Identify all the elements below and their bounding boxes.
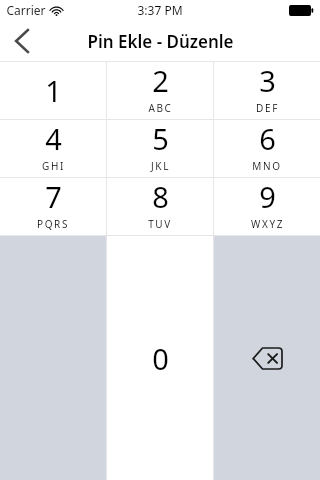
staticText: 8 (152, 177, 169, 216)
staticText: PQRS (37, 217, 69, 231)
button[interactable]: Backspace (214, 236, 320, 480)
staticText: 5 (152, 119, 169, 158)
staticText: 7 (45, 177, 62, 216)
staticText: 0 (152, 339, 169, 378)
button[interactable]: 3 (214, 62, 320, 119)
staticText: 1 (45, 71, 62, 110)
button[interactable]: 9 (214, 178, 320, 235)
button[interactable]: 2 (107, 62, 213, 119)
button[interactable]: 1 (0, 62, 106, 119)
staticText: JKL (151, 159, 170, 173)
staticText: 9 (259, 177, 276, 216)
button[interactable]: 4 (0, 120, 106, 177)
button[interactable]: 0 (107, 236, 213, 480)
staticText: DEF (256, 101, 279, 115)
staticText: MNO (252, 159, 282, 173)
button[interactable]: 6 (214, 120, 320, 177)
staticText: 4 (45, 119, 62, 158)
staticText: 3 (259, 61, 276, 100)
staticText: GHI (42, 159, 65, 173)
staticText: 3:37 PM (137, 2, 183, 18)
staticText: TUV (148, 217, 172, 231)
button[interactable]: 7 (0, 178, 106, 235)
staticText: Pin Ekle - Düzenle (87, 30, 234, 53)
button[interactable]: 8 (107, 178, 213, 235)
button[interactable]: 5 (107, 120, 213, 177)
staticText: 2 (152, 61, 169, 100)
button[interactable]: Back (0, 20, 44, 62)
staticText: 6 (259, 119, 276, 158)
staticText: Carrier (6, 2, 46, 18)
staticText: WXYZ (251, 217, 284, 231)
staticText: ABC (148, 101, 173, 115)
